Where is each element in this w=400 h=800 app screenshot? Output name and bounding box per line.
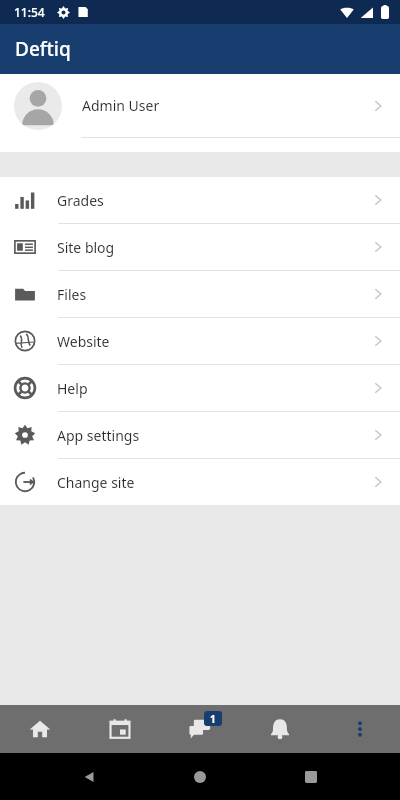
staticText: Admin User	[82, 96, 160, 115]
button[interactable]: Grades	[0, 177, 400, 223]
staticText: Deftiq	[15, 36, 71, 62]
button[interactable]: More options	[320, 705, 400, 753]
button[interactable]: Change site	[0, 459, 400, 505]
button[interactable]: Home	[0, 705, 80, 753]
staticText: Website	[57, 332, 110, 351]
staticText: Help	[57, 379, 88, 398]
button[interactable]: Website	[0, 318, 400, 364]
button[interactable]: Admin User	[0, 74, 400, 137]
staticText: 11:54	[14, 4, 45, 20]
button[interactable]: Messages	[160, 705, 240, 753]
staticText: Files	[57, 285, 87, 304]
staticText: Grades	[57, 191, 104, 210]
staticText: 1	[210, 712, 216, 726]
button[interactable]: Calendar	[80, 705, 160, 753]
button[interactable]: Site blog	[0, 224, 400, 270]
staticText: Site blog	[57, 238, 115, 257]
button[interactable]: Notifications	[240, 705, 320, 753]
button[interactable]: Files	[0, 271, 400, 317]
button[interactable]: Help	[0, 365, 400, 411]
staticText: App settings	[57, 426, 140, 445]
button[interactable]: App settings	[0, 412, 400, 458]
staticText: Change site	[57, 473, 135, 492]
